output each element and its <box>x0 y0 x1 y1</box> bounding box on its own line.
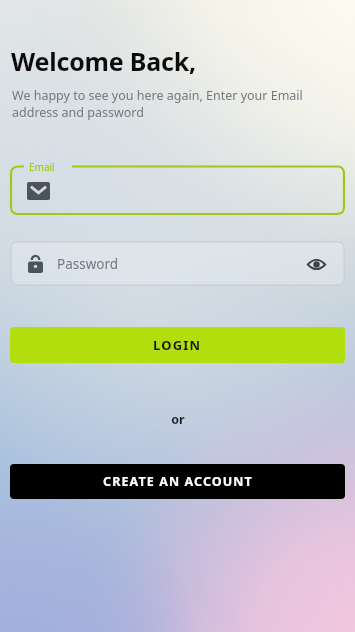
other: Email <box>27 182 50 200</box>
staticText: LOGIN <box>153 336 202 354</box>
button[interactable]: Password <box>10 241 345 286</box>
staticText: Password <box>57 255 119 273</box>
staticText: or <box>171 411 185 428</box>
button[interactable]: Email <box>10 159 345 215</box>
button[interactable]: CREATE AN ACCOUNT <box>10 464 345 499</box>
button[interactable]: LOGIN <box>10 327 345 363</box>
staticText: CREATE AN ACCOUNT <box>103 473 253 490</box>
staticText: We happy to see you here again, Enter yo… <box>12 87 347 121</box>
staticText: Welcome Back, <box>11 44 196 78</box>
button[interactable]: Show password <box>303 251 329 277</box>
staticText: Email <box>29 160 55 174</box>
